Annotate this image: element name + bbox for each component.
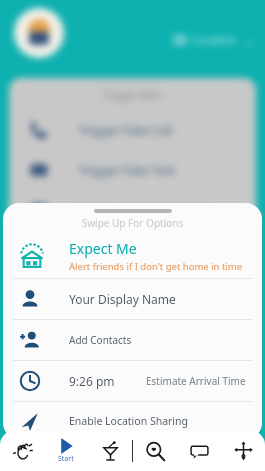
staticText: Trigger Something Else bbox=[79, 202, 210, 218]
staticText: Trigger Fake Text bbox=[79, 162, 176, 178]
staticText: ᵥ bbox=[247, 32, 251, 47]
staticText: Alert friends if I don't get home in tim… bbox=[69, 260, 243, 273]
staticText: Location bbox=[192, 32, 237, 47]
button[interactable]: Start bbox=[44, 431, 88, 471]
staticText: Add Contacts bbox=[69, 333, 132, 347]
button[interactable]: Expect Me bbox=[3, 234, 262, 278]
button[interactable]: Panic bbox=[0, 431, 44, 471]
staticText: Trigger Alert bbox=[9, 88, 256, 102]
button[interactable]: Help bbox=[177, 431, 221, 471]
staticText: Enable Location Sharing bbox=[69, 414, 189, 428]
staticText: Estimate Arrival Time bbox=[146, 374, 246, 388]
staticText: Your Display Name bbox=[69, 291, 176, 307]
button[interactable]: Your Display Name bbox=[3, 279, 262, 319]
staticText: Start bbox=[58, 454, 74, 464]
staticText: Expect Me bbox=[69, 239, 137, 258]
button[interactable]: Add Contacts bbox=[3, 320, 262, 360]
button[interactable]: Drink bbox=[88, 431, 132, 471]
staticText: Trigger Fake Call bbox=[79, 122, 173, 138]
button[interactable]: Enable Location Sharing bbox=[3, 402, 262, 439]
button[interactable]: Move bbox=[221, 431, 265, 471]
button[interactable]: 9:26 pm bbox=[3, 361, 262, 401]
staticText: 9:26 pm bbox=[69, 373, 115, 389]
button[interactable]: Search bbox=[133, 431, 177, 471]
staticText: Swipe Up For Options bbox=[3, 216, 262, 230]
